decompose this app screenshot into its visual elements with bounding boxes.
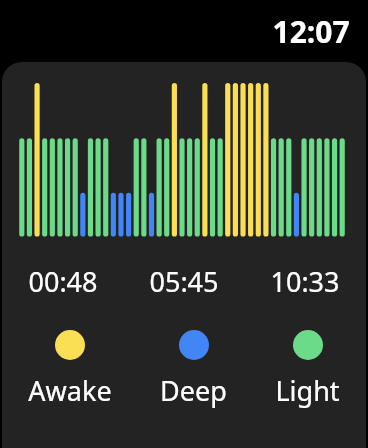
staticText: Awake: [28, 372, 112, 409]
staticText: Deep: [160, 372, 227, 409]
staticText: 00:48: [28, 263, 98, 300]
staticText: Light: [275, 372, 340, 409]
staticText: 12:07: [272, 11, 350, 52]
other: Sleep stages chart: [2, 74, 366, 239]
staticText: 05:45: [149, 263, 219, 300]
button[interactable]: Sleep stages chart: [2, 62, 366, 448]
button[interactable]: Deep: [156, 330, 231, 409]
button[interactable]: Light: [271, 330, 344, 409]
button[interactable]: Awake: [24, 330, 116, 409]
staticText: 10:33: [270, 263, 340, 300]
